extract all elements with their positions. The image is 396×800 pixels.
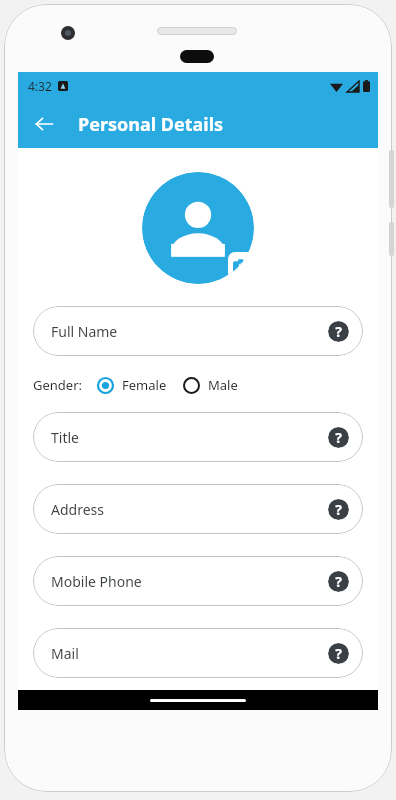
button[interactable]: Help for Full Name	[328, 321, 349, 342]
staticText: Gender:	[33, 376, 83, 394]
button[interactable]: Full Name	[33, 306, 363, 356]
staticText: Full Name	[51, 322, 118, 341]
button[interactable]: Help for Title	[328, 427, 349, 448]
staticText: Address	[51, 500, 104, 519]
staticText: Personal Details	[78, 112, 224, 137]
button[interactable]: Change profile photo	[142, 172, 254, 284]
button[interactable]: Mobile Phone	[33, 556, 363, 606]
button[interactable]: Help for Address	[328, 499, 349, 520]
button[interactable]: Title	[33, 412, 363, 462]
staticText: ?	[335, 644, 342, 663]
button[interactable]: Address	[33, 484, 363, 534]
button[interactable]: Help for Mail	[328, 643, 349, 664]
staticText: ?	[335, 322, 342, 341]
staticText: Female	[122, 376, 167, 394]
button[interactable]: Female	[97, 374, 167, 396]
staticText: ?	[335, 428, 342, 447]
staticText: Mobile Phone	[51, 572, 142, 591]
staticText: Mail	[51, 644, 79, 663]
button[interactable]: Mail	[33, 628, 363, 678]
staticText: Male	[208, 376, 238, 394]
staticText: ?	[335, 572, 342, 591]
button[interactable]: Back	[24, 104, 64, 144]
staticText: 4:32	[28, 78, 52, 94]
staticText: Title	[51, 428, 79, 447]
button[interactable]: Help for Mobile Phone	[328, 571, 349, 592]
staticText: ?	[335, 500, 342, 519]
button[interactable]: Male	[183, 374, 238, 396]
